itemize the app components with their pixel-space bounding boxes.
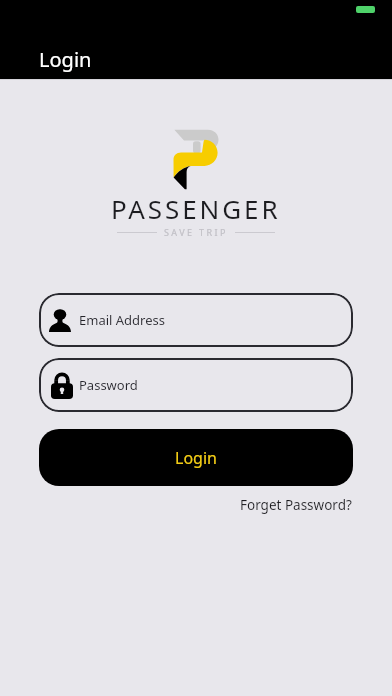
staticText: PASSENGER: [111, 191, 281, 226]
staticText: Login: [39, 46, 92, 73]
button[interactable]: Password: [39, 358, 353, 412]
staticText: Password: [79, 376, 138, 394]
staticText: Email Address: [79, 311, 165, 329]
staticText: Login: [175, 447, 217, 469]
button[interactable]: Login: [39, 429, 353, 486]
staticText: SAVE TRIP: [164, 226, 228, 238]
button[interactable]: Forget Password?: [234, 492, 358, 518]
button[interactable]: Email Address: [39, 293, 353, 347]
staticText: Forget Password?: [240, 496, 352, 514]
